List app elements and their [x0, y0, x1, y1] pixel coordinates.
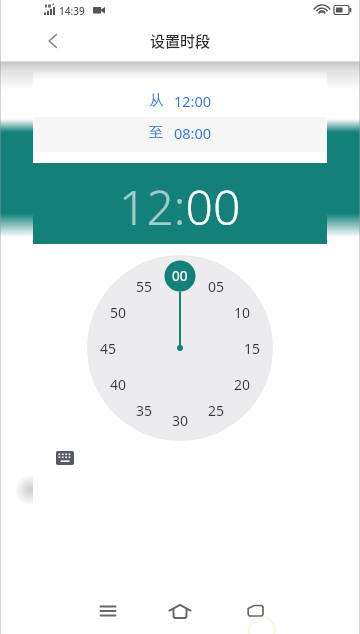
- staticText: 40: [110, 375, 127, 394]
- button[interactable]: 35: [129, 400, 159, 420]
- staticText: 25: [208, 401, 225, 420]
- button[interactable]: 10: [227, 302, 257, 322]
- staticText: 35: [136, 401, 153, 420]
- button[interactable]: 40: [103, 374, 133, 394]
- staticText: 55: [136, 277, 153, 296]
- staticText: 10: [234, 303, 251, 322]
- button[interactable]: [32, 21, 72, 61]
- staticText: 50: [110, 303, 127, 322]
- staticText: 12:00: [174, 91, 212, 111]
- button[interactable]: 至: [33, 118, 327, 148]
- button[interactable]: [84, 588, 132, 634]
- button[interactable]: [231, 588, 279, 634]
- staticText: 12:00: [119, 174, 241, 239]
- button[interactable]: 25: [201, 400, 231, 420]
- button[interactable]: 50: [103, 302, 133, 322]
- staticText: 08:00: [174, 123, 212, 143]
- staticText: 设置时段: [150, 30, 211, 52]
- staticText: 05: [208, 277, 225, 296]
- staticText: 45: [100, 339, 117, 358]
- button[interactable]: 15: [237, 338, 267, 358]
- button[interactable]: 30: [165, 410, 195, 430]
- staticText: 从: [149, 91, 164, 109]
- button[interactable]: 20: [227, 374, 257, 394]
- button[interactable]: 45: [93, 338, 123, 358]
- staticText: 14:39: [59, 4, 85, 18]
- button[interactable]: 55: [129, 276, 159, 296]
- button[interactable]: 从: [33, 86, 327, 116]
- staticText: 20: [234, 375, 251, 394]
- button[interactable]: [44, 437, 86, 479]
- staticText: 00: [172, 267, 188, 285]
- button[interactable]: 05: [201, 276, 231, 296]
- staticText: 至: [149, 123, 164, 141]
- button[interactable]: [156, 588, 204, 634]
- staticText: 30: [172, 411, 189, 430]
- staticText: 15: [244, 339, 261, 358]
